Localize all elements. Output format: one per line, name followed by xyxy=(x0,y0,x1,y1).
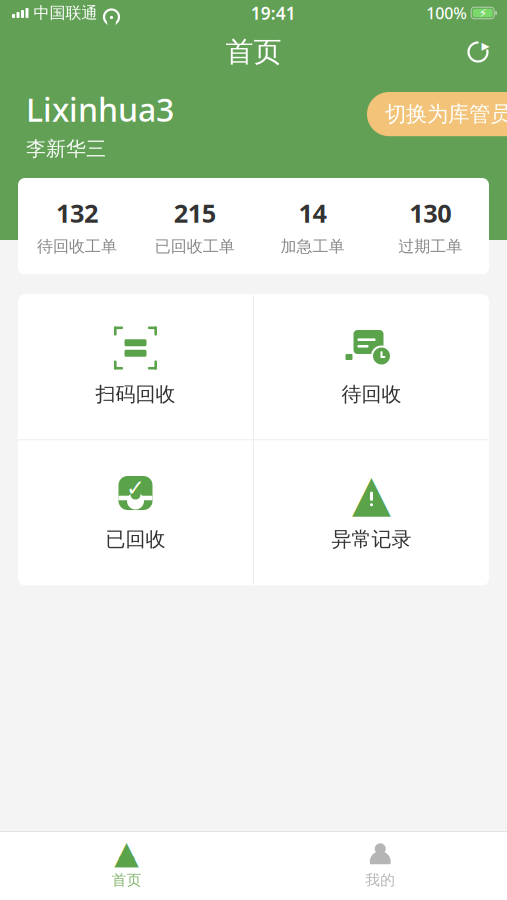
staticText: 过期工单 xyxy=(398,237,462,256)
staticText: 已回收工单 xyxy=(155,237,235,256)
button[interactable]: 刷新 xyxy=(465,39,507,65)
staticText: 100% xyxy=(426,2,467,24)
button[interactable]: ▲ xyxy=(0,836,253,896)
staticText: 我的 xyxy=(365,871,395,889)
staticText: 首页 xyxy=(112,871,142,889)
staticText: ▸ xyxy=(481,36,489,55)
staticText: 首页 xyxy=(225,35,281,69)
staticText: ▲ xyxy=(114,834,139,871)
button[interactable]: ▲ xyxy=(254,440,489,584)
staticText: 李新华三 xyxy=(26,136,106,161)
staticText: Lixinhua3 xyxy=(26,88,174,130)
button[interactable]: ✓ xyxy=(18,440,253,584)
staticText: 130 xyxy=(409,196,451,230)
staticText: 异常记录 xyxy=(331,527,411,552)
staticText: 已回收 xyxy=(105,527,165,552)
staticText: 加急工单 xyxy=(280,237,344,256)
staticText: 切换为库管员 xyxy=(385,101,507,127)
staticText: 待回收 xyxy=(341,382,401,407)
button[interactable]: 扫码回收 xyxy=(18,295,253,439)
staticText: 215 xyxy=(174,196,216,230)
staticText: 扫码回收 xyxy=(95,382,175,407)
staticText: ▲ xyxy=(352,464,391,522)
staticText: 19:41 xyxy=(251,1,296,24)
staticText: ✓ xyxy=(126,475,145,501)
staticText: ⚡︎ xyxy=(479,6,487,20)
staticText: 待回收工单 xyxy=(37,237,117,256)
button[interactable]: 我的 xyxy=(253,836,507,896)
staticText: 14 xyxy=(298,196,326,230)
staticText: 132 xyxy=(56,196,98,230)
button[interactable]: 待回收 xyxy=(254,295,489,439)
staticText: 中国联通 xyxy=(33,3,97,23)
button[interactable]: 切换为库管员 xyxy=(367,92,507,136)
